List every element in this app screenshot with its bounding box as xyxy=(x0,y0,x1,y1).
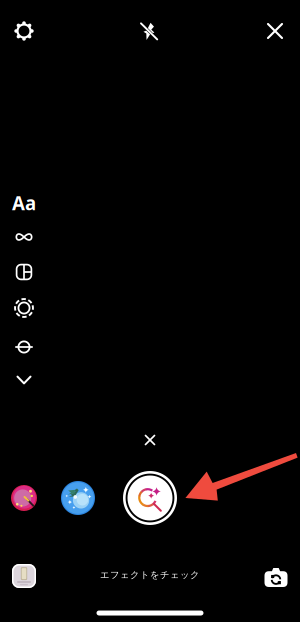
button[interactable]: Boomerang xyxy=(4,222,44,252)
button[interactable]: Aa xyxy=(4,188,44,218)
button[interactable]: Effect xyxy=(58,476,98,520)
button[interactable]: Superzoom xyxy=(4,293,44,323)
button[interactable]: Clear effect xyxy=(135,425,165,455)
button[interactable]: Hands-free xyxy=(4,332,44,362)
staticText: エフェクトをチェック xyxy=(100,569,200,581)
button[interactable]: More options xyxy=(4,367,44,393)
button[interactable]: Layout xyxy=(4,257,44,287)
button[interactable]: Gallery xyxy=(4,556,44,596)
button[interactable]: Effect xyxy=(7,478,41,518)
button[interactable]: Capture xyxy=(122,470,178,526)
button[interactable]: Switch camera xyxy=(256,557,296,597)
button[interactable]: Flash off xyxy=(127,9,171,53)
button[interactable]: Camera settings xyxy=(2,9,46,53)
button[interactable]: Close xyxy=(253,9,297,53)
staticText: Aa xyxy=(12,191,36,215)
